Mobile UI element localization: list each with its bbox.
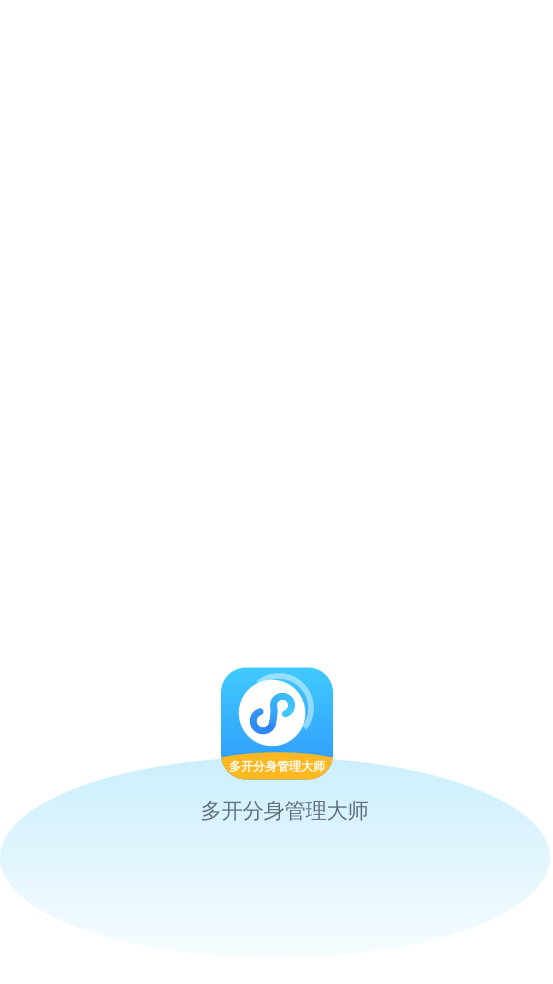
staticText: 多开分身管理大师 <box>229 759 325 774</box>
staticText: 多开分身管理大师 <box>200 798 368 824</box>
